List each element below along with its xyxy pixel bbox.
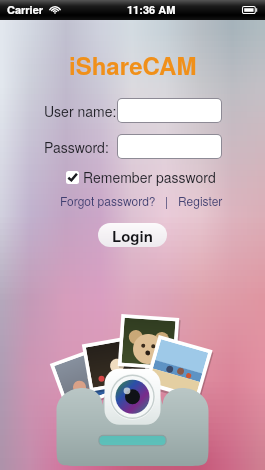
staticText: | <box>165 192 169 209</box>
staticText: iShareCAM <box>69 48 197 82</box>
staticText: 11:36 AM <box>127 2 176 18</box>
staticText: User name: <box>44 101 117 121</box>
button[interactable] <box>118 135 221 158</box>
other: Wi-Fi signal <box>49 4 61 16</box>
button[interactable]: Remember password <box>66 167 216 187</box>
button[interactable]: Register <box>178 192 223 209</box>
staticText: Password: <box>44 137 109 157</box>
staticText: Login <box>112 225 153 246</box>
button[interactable]: Forgot password? <box>60 192 156 209</box>
button[interactable] <box>118 99 221 122</box>
button[interactable]: Login <box>98 223 167 247</box>
staticText: Carrier <box>7 2 44 18</box>
other: Battery <box>242 6 258 14</box>
staticText: Remember password <box>83 167 216 187</box>
